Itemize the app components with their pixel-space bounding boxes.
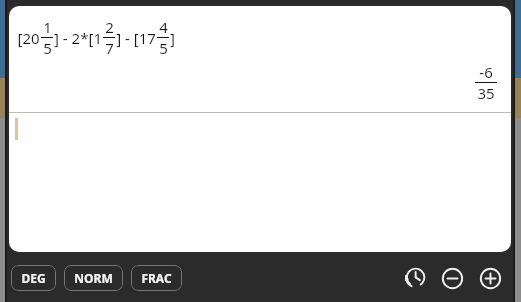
button[interactable]: Increase text size (473, 261, 507, 295)
button[interactable]: History (397, 261, 431, 295)
staticText: 4 (159, 17, 168, 37)
button[interactable]: FRAC (131, 265, 182, 291)
button[interactable]: [20 (9, 6, 511, 252)
staticText: [20 (17, 28, 40, 48)
staticText: DEG (21, 270, 46, 286)
button[interactable]: NORM (64, 265, 123, 291)
staticText: ] (170, 28, 175, 48)
staticText: 2 (105, 17, 114, 37)
staticText: 5 (43, 38, 52, 58)
staticText: 1 (43, 17, 52, 37)
staticText: 35 (477, 83, 495, 103)
button[interactable]: DEG (11, 265, 56, 291)
button[interactable]: Decrease text size (435, 261, 469, 295)
staticText: FRAC (141, 270, 172, 286)
staticText: ] - [17 (116, 28, 156, 48)
staticText: -6 (479, 62, 493, 82)
staticText: 5 (159, 38, 168, 58)
staticText: NORM (74, 270, 113, 286)
staticText: 7 (105, 38, 114, 58)
staticText: ] - 2*[1 (54, 28, 102, 48)
